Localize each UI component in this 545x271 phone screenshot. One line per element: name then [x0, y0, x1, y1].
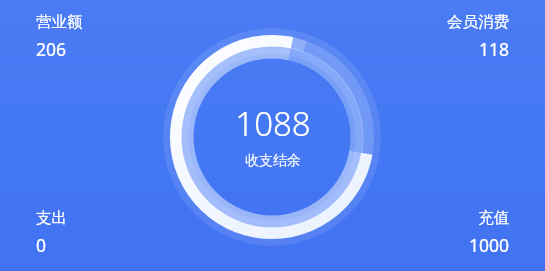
staticText: 1088 — [235, 101, 311, 146]
button[interactable]: 支出 — [32, 206, 71, 259]
staticText: 收支结余 — [245, 152, 301, 170]
button[interactable]: 营业额 — [32, 10, 87, 63]
button[interactable]: 充值 — [464, 206, 513, 259]
other: 收支结余 1088 — [0, 0, 545, 271]
staticText: 支出 — [36, 208, 67, 228]
staticText: 0 — [36, 233, 47, 257]
staticText: 充值 — [478, 208, 509, 228]
button[interactable]: 会员消费 — [443, 10, 513, 63]
staticText: 营业额 — [36, 12, 83, 32]
staticText: 118 — [478, 37, 509, 61]
staticText: 1000 — [468, 233, 509, 257]
staticText: 会员消费 — [447, 12, 509, 32]
staticText: 206 — [36, 37, 67, 61]
